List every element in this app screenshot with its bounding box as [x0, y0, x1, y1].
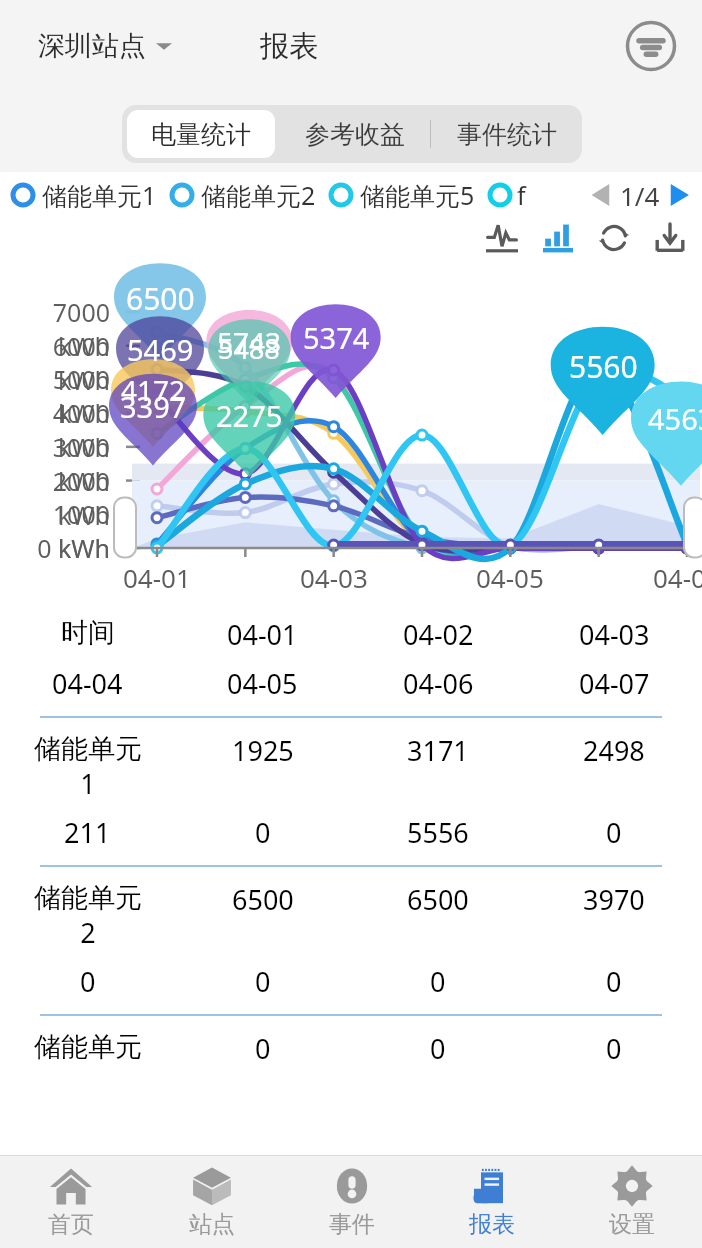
staticText: 储能单元2 [201, 178, 316, 212]
button[interactable]: 储能单元 2 [0, 867, 702, 1014]
staticText: f [517, 178, 526, 212]
staticText: 时间 [61, 616, 115, 650]
staticText: 04-02 [403, 616, 474, 653]
staticText: 5560 [569, 346, 638, 387]
staticText: 站点 [189, 1210, 235, 1239]
staticText: 5488 [218, 330, 280, 367]
staticText: 储能单元5 [360, 178, 475, 212]
button[interactable]: Previous page [584, 177, 620, 213]
staticText: 深圳站点 [38, 29, 146, 63]
staticText: 2498 [583, 732, 645, 769]
staticText: 报表 [260, 28, 318, 65]
staticText: 04-07 [579, 665, 650, 702]
staticText: 3171 [407, 732, 469, 769]
staticText: 2000 kWh [0, 464, 110, 532]
staticText: 04-01 [227, 616, 298, 653]
button[interactable]: f [487, 178, 526, 212]
staticText: 3397 [120, 387, 187, 426]
button[interactable]: Refresh [594, 218, 634, 258]
staticText: 04-06 [403, 665, 474, 702]
button[interactable]: 报表 [422, 1155, 562, 1248]
staticText: 事件统计 [457, 119, 557, 150]
staticText: 5000 kWh [0, 362, 110, 430]
staticText: 电量统计 [151, 119, 251, 150]
staticText: 储能单元1 [42, 178, 157, 212]
staticText: 设置 [609, 1210, 655, 1239]
button[interactable]: Filter [622, 17, 680, 75]
button[interactable]: 参考收益 [280, 105, 430, 163]
staticText: 6500 [126, 278, 195, 319]
staticText: 04-01 [123, 560, 191, 595]
staticText: 储能单元 2 [34, 881, 142, 951]
staticText: 04-03 [300, 560, 368, 595]
staticText: 0 [255, 963, 271, 1000]
staticText: 储能单元 1 [34, 732, 142, 802]
staticText: 04-04 [52, 665, 123, 702]
button[interactable]: Bar chart [538, 218, 578, 258]
staticText: 储能单元 [34, 1030, 142, 1064]
button[interactable]: 事件 [282, 1155, 422, 1248]
staticText: 5556 [407, 814, 469, 851]
staticText: 6500 [407, 881, 469, 918]
button[interactable]: 储能单元2 [169, 178, 316, 212]
staticText: 211 [64, 814, 111, 851]
button[interactable]: Line chart [482, 218, 522, 258]
staticText: 参考收益 [305, 119, 405, 150]
staticText: 7000 kWh [0, 295, 110, 363]
staticText: 0 kWh [37, 531, 110, 565]
staticText: 0 [80, 963, 96, 1000]
staticText: 0 [255, 1030, 271, 1067]
staticText: 0 [255, 814, 271, 851]
staticText: 6500 [232, 881, 294, 918]
staticText: 04-05 [476, 560, 544, 595]
staticText: 0 [606, 814, 622, 851]
staticText: 5469 [127, 330, 194, 369]
staticText: 3970 [583, 881, 645, 918]
staticText: 1/4 [620, 178, 660, 213]
staticText: 4000 kWh [0, 396, 110, 464]
button[interactable]: Download [650, 218, 690, 258]
button[interactable]: 设置 [562, 1155, 702, 1248]
staticText: 6000 kWh [0, 329, 110, 397]
staticText: 1000 kWh [0, 497, 110, 565]
staticText: 4563 [648, 399, 702, 438]
staticText: 04-07 [653, 560, 702, 595]
button[interactable]: 时间 [0, 602, 702, 716]
staticText: 0 [430, 963, 446, 1000]
button[interactable]: 深圳站点 [38, 29, 172, 63]
staticText: 5374 [303, 318, 370, 357]
staticText: 1925 [232, 732, 294, 769]
staticText: 3000 kWh [0, 430, 110, 498]
staticText: 首页 [48, 1210, 94, 1239]
button[interactable]: 事件统计 [431, 105, 582, 163]
staticText: 4172 [121, 371, 186, 409]
staticText: 0 [606, 1030, 622, 1067]
button[interactable]: 站点 [141, 1155, 282, 1248]
staticText: 5743 [217, 323, 282, 361]
button[interactable]: 储能单元5 [328, 178, 475, 212]
button[interactable]: 首页 [0, 1155, 141, 1248]
button[interactable]: 电量统计 [127, 110, 275, 158]
button[interactable]: Next page [660, 177, 696, 213]
button[interactable]: 储能单元 1 [0, 718, 702, 865]
button[interactable]: 储能单元1 [10, 178, 157, 212]
staticText: 2275 [216, 396, 283, 435]
staticText: 0 [606, 963, 622, 1000]
staticText: 04-03 [579, 616, 650, 653]
staticText: 04-05 [227, 665, 298, 702]
staticText: 0 [430, 1030, 446, 1067]
staticText: 事件 [329, 1210, 375, 1239]
staticText: 报表 [469, 1210, 515, 1239]
